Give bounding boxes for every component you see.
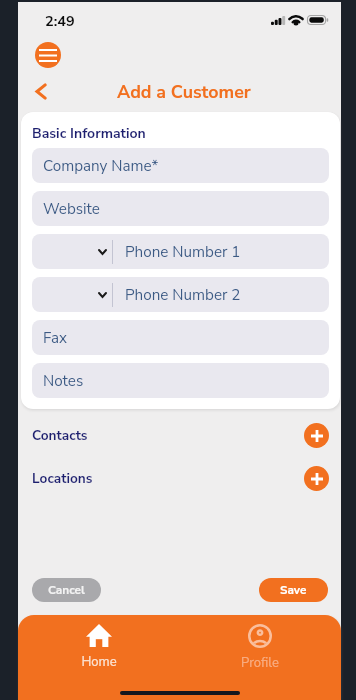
button[interactable]: Phone Number 2 bbox=[32, 277, 329, 312]
button[interactable]: Save bbox=[259, 578, 328, 602]
staticText: Company Name* bbox=[43, 156, 159, 177]
staticText: Notes bbox=[43, 371, 84, 392]
button[interactable]: Cancel bbox=[32, 578, 101, 602]
button[interactable]: Add Contacts bbox=[304, 423, 329, 448]
button[interactable]: Fax bbox=[32, 320, 329, 355]
button[interactable]: Menu bbox=[35, 42, 61, 68]
button[interactable]: Back bbox=[27, 77, 55, 105]
staticText: Locations bbox=[32, 469, 93, 488]
button[interactable]: Phone Number 1 bbox=[32, 234, 329, 269]
staticText: Cancel bbox=[48, 582, 85, 598]
button[interactable]: Notes bbox=[32, 363, 329, 398]
button[interactable]: Add Locations bbox=[304, 466, 329, 491]
staticText: Home bbox=[81, 653, 117, 671]
staticText: Website bbox=[43, 199, 100, 220]
staticText: Profile bbox=[241, 654, 279, 672]
staticText: Fax bbox=[43, 328, 68, 349]
staticText: Contacts bbox=[32, 426, 88, 445]
button[interactable]: Company Name* bbox=[32, 148, 329, 183]
button[interactable]: Profile bbox=[179, 615, 341, 673]
button[interactable]: Home bbox=[18, 615, 179, 673]
staticText: Basic Information bbox=[32, 124, 146, 143]
staticText: Save bbox=[280, 582, 307, 598]
staticText: 2:49 bbox=[45, 11, 75, 31]
staticText: Add a Customer bbox=[117, 80, 251, 98]
staticText: Phone Number 2 bbox=[125, 285, 241, 306]
button[interactable]: Website bbox=[32, 191, 329, 226]
staticText: Phone Number 1 bbox=[125, 242, 241, 263]
